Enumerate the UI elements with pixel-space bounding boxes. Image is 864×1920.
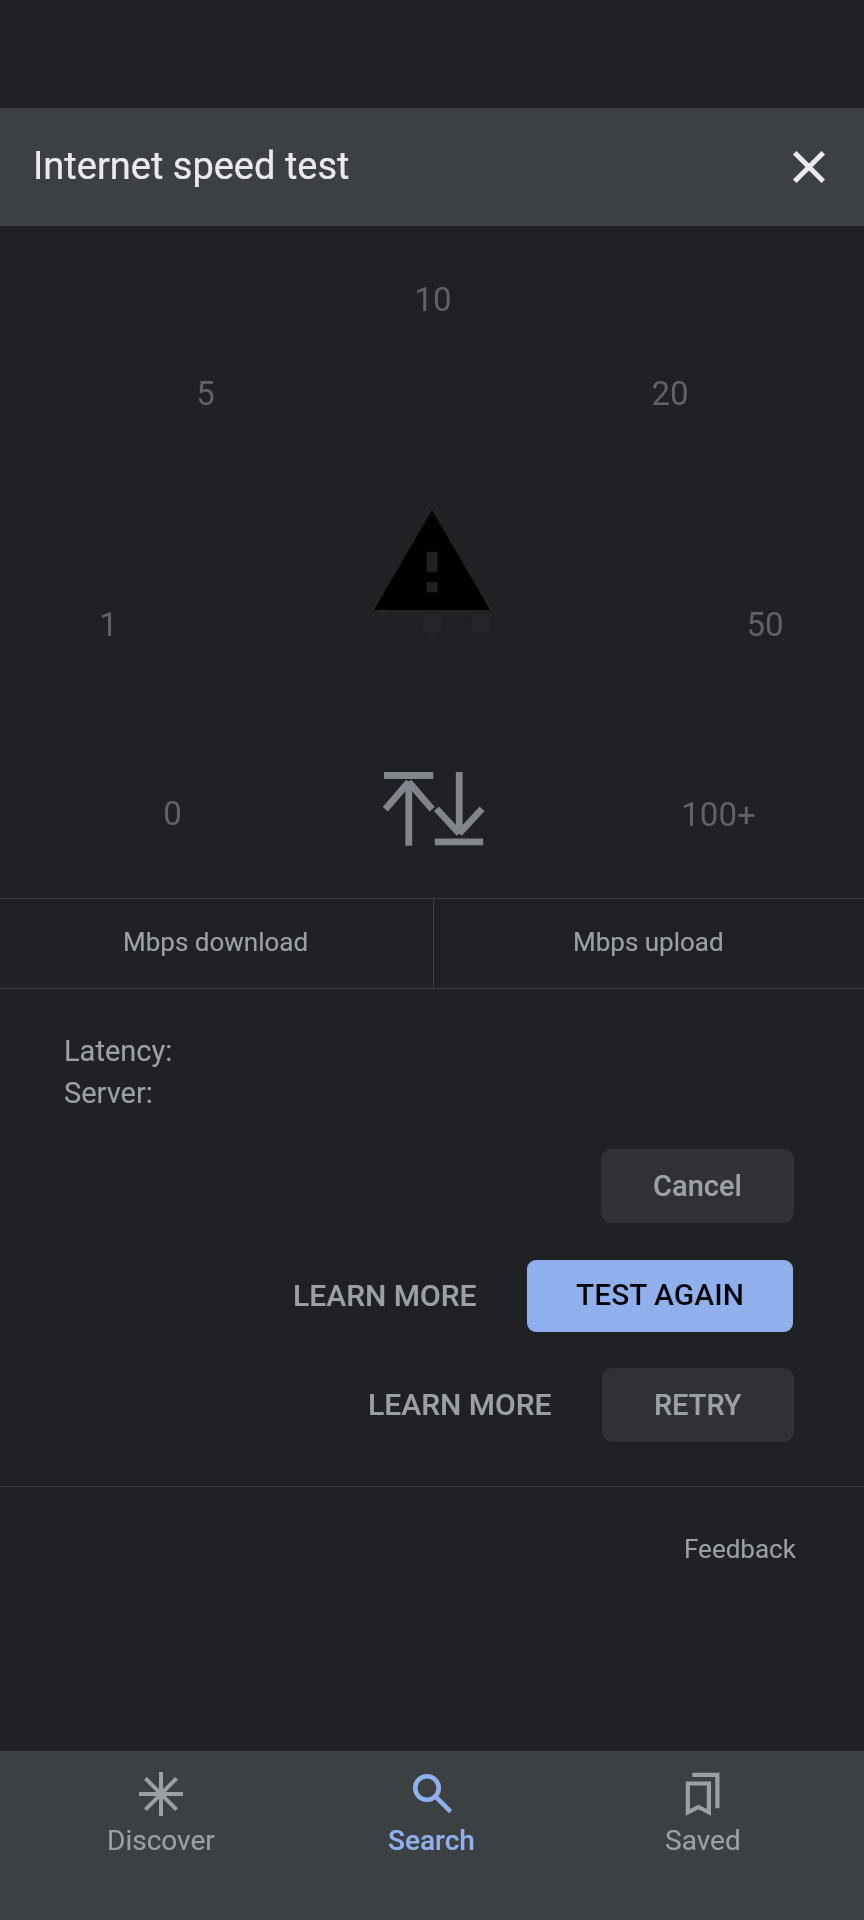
button[interactable]: RETRY — [602, 1368, 794, 1442]
staticText: Latency: — [64, 1034, 173, 1068]
staticText: Discover — [107, 1824, 215, 1857]
staticText: 100+ — [681, 795, 756, 834]
staticText: Internet speed test — [33, 144, 350, 189]
button[interactable]: Cancel — [601, 1149, 794, 1223]
button[interactable]: Mbps download — [0, 898, 432, 989]
staticText: Saved — [665, 1824, 741, 1857]
staticText: 50 — [746, 605, 784, 644]
staticText: 20 — [651, 374, 689, 413]
staticText: 10 — [414, 280, 452, 319]
staticText: LEARN MORE — [293, 1278, 477, 1313]
button[interactable]: LEARN MORE — [352, 1370, 568, 1438]
staticText: LEARN MORE — [368, 1387, 552, 1422]
button[interactable]: Mbps upload — [432, 898, 864, 989]
staticText: Feedback — [684, 1534, 796, 1564]
staticText: 1 — [99, 605, 118, 644]
staticText: Mbps upload — [573, 927, 724, 957]
staticText: RETRY — [654, 1388, 742, 1422]
staticText: Mbps download — [123, 927, 309, 957]
staticText: Cancel — [653, 1169, 742, 1203]
button[interactable]: TEST AGAIN — [527, 1260, 793, 1332]
staticText: 5 — [196, 374, 215, 413]
staticText: 0 — [163, 794, 182, 833]
button[interactable]: Discover — [26, 1751, 296, 1920]
staticText: TEST AGAIN — [576, 1277, 744, 1312]
button[interactable]: LEARN MORE — [277, 1261, 493, 1329]
button[interactable]: Close — [773, 131, 845, 203]
button[interactable]: Feedback — [668, 1519, 812, 1579]
staticText: Server: — [64, 1076, 153, 1110]
staticText: Search — [388, 1824, 475, 1857]
button[interactable]: Saved — [567, 1751, 838, 1920]
button[interactable]: Search — [296, 1751, 567, 1920]
